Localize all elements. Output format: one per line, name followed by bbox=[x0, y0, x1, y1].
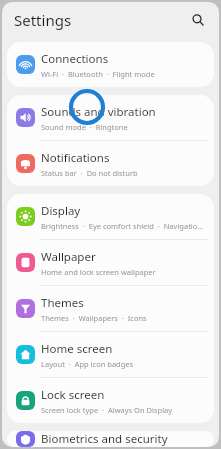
button[interactable]: Wallpaper bbox=[7, 240, 214, 285]
staticText: Themes bbox=[41, 295, 84, 311]
staticText: Wallpaper bbox=[41, 249, 96, 265]
staticText: Brightness · Eye comfort shield · Naviga… bbox=[41, 221, 206, 231]
staticText: Settings bbox=[14, 10, 72, 30]
button[interactable]: Themes bbox=[7, 286, 214, 331]
staticText: Sound mode · Ringtone bbox=[41, 122, 128, 132]
staticText: Biometrics and security bbox=[41, 431, 168, 447]
staticText: Connections bbox=[41, 51, 109, 67]
button[interactable]: Connections bbox=[7, 42, 214, 87]
staticText: Screen lock type · Always On Display bbox=[41, 405, 173, 415]
staticText: Status bar · Do not disturb bbox=[41, 168, 138, 178]
button[interactable]: Sounds and vibration bbox=[7, 95, 214, 140]
button[interactable]: Home screen bbox=[7, 332, 214, 377]
staticText: Lock screen bbox=[41, 387, 105, 403]
button[interactable]: Biometrics and security bbox=[7, 431, 214, 447]
staticText: Notifications bbox=[41, 150, 110, 166]
staticText: Home screen bbox=[41, 341, 113, 357]
button[interactable]: Notifications bbox=[7, 141, 214, 186]
button[interactable]: Display bbox=[7, 194, 214, 239]
staticText: Sounds and vibration bbox=[41, 104, 156, 120]
staticText: Home and lock screen wallpaper bbox=[41, 267, 156, 277]
staticText: Wi-Fi · Bluetooth · Flight mode bbox=[41, 69, 155, 79]
button[interactable]: Lock screen bbox=[7, 378, 214, 423]
staticText: Themes · Wallpapers · Icons bbox=[41, 313, 147, 323]
staticText: Layout · App icon badges bbox=[41, 359, 134, 369]
button[interactable]: Search bbox=[185, 7, 211, 33]
staticText: Display bbox=[41, 203, 81, 219]
